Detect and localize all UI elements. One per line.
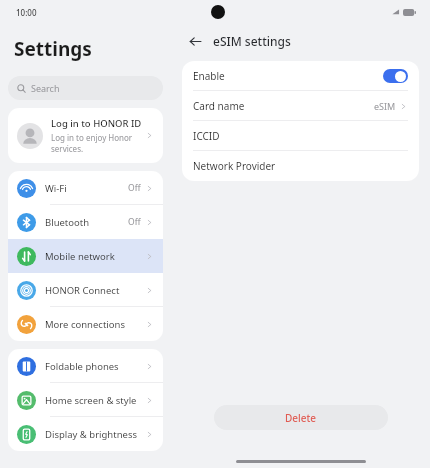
button[interactable]: Foldable phones [8,349,163,383]
staticText: Off [128,216,141,228]
button[interactable]: Enable [182,61,419,91]
button[interactable]: Back [185,31,205,51]
staticText: Network Provider [193,159,408,173]
staticText: Display & brightness [45,428,145,441]
button[interactable]: Mobile network [8,239,163,273]
staticText: Off [128,182,141,194]
button[interactable]: HONOR Connect [8,273,163,307]
staticText: eSIM settings [213,33,291,49]
button[interactable]: Bluetooth [8,205,163,239]
staticText: More connections [45,318,145,331]
button[interactable]: Search [8,76,163,100]
staticText: eSIM [374,100,396,112]
staticText: services. [51,143,84,154]
staticText: ICCID [193,129,408,143]
button[interactable]: Card name [182,91,419,121]
staticText: Bluetooth [45,216,128,229]
staticText: Settings [14,36,92,62]
button[interactable]: More connections [8,307,163,341]
staticText: 10:00 [16,7,37,18]
button[interactable]: Network Provider [182,151,419,181]
staticText: Mobile network [45,250,145,263]
button[interactable]: ICCID [182,121,419,151]
staticText: Enable [193,69,383,83]
button[interactable]: Home screen & style [8,383,163,417]
button[interactable]: Log in to HONOR ID [8,108,163,163]
button[interactable]: Delete [214,405,388,430]
staticText: Foldable phones [45,360,145,373]
button[interactable]: Display & brightness [8,417,163,451]
staticText: HONOR Connect [45,284,145,297]
staticText: Home screen & style [45,394,145,407]
staticText: Wi-Fi [45,182,128,195]
button[interactable]: Enable toggle [383,69,408,83]
staticText: Log in to HONOR ID [51,117,142,130]
staticText: Card name [193,99,374,113]
button[interactable]: Wi-Fi [8,171,163,205]
staticText: Delete [285,411,317,425]
staticText: Search [31,82,60,94]
staticText: Log in to enjoy Honor [51,132,133,143]
